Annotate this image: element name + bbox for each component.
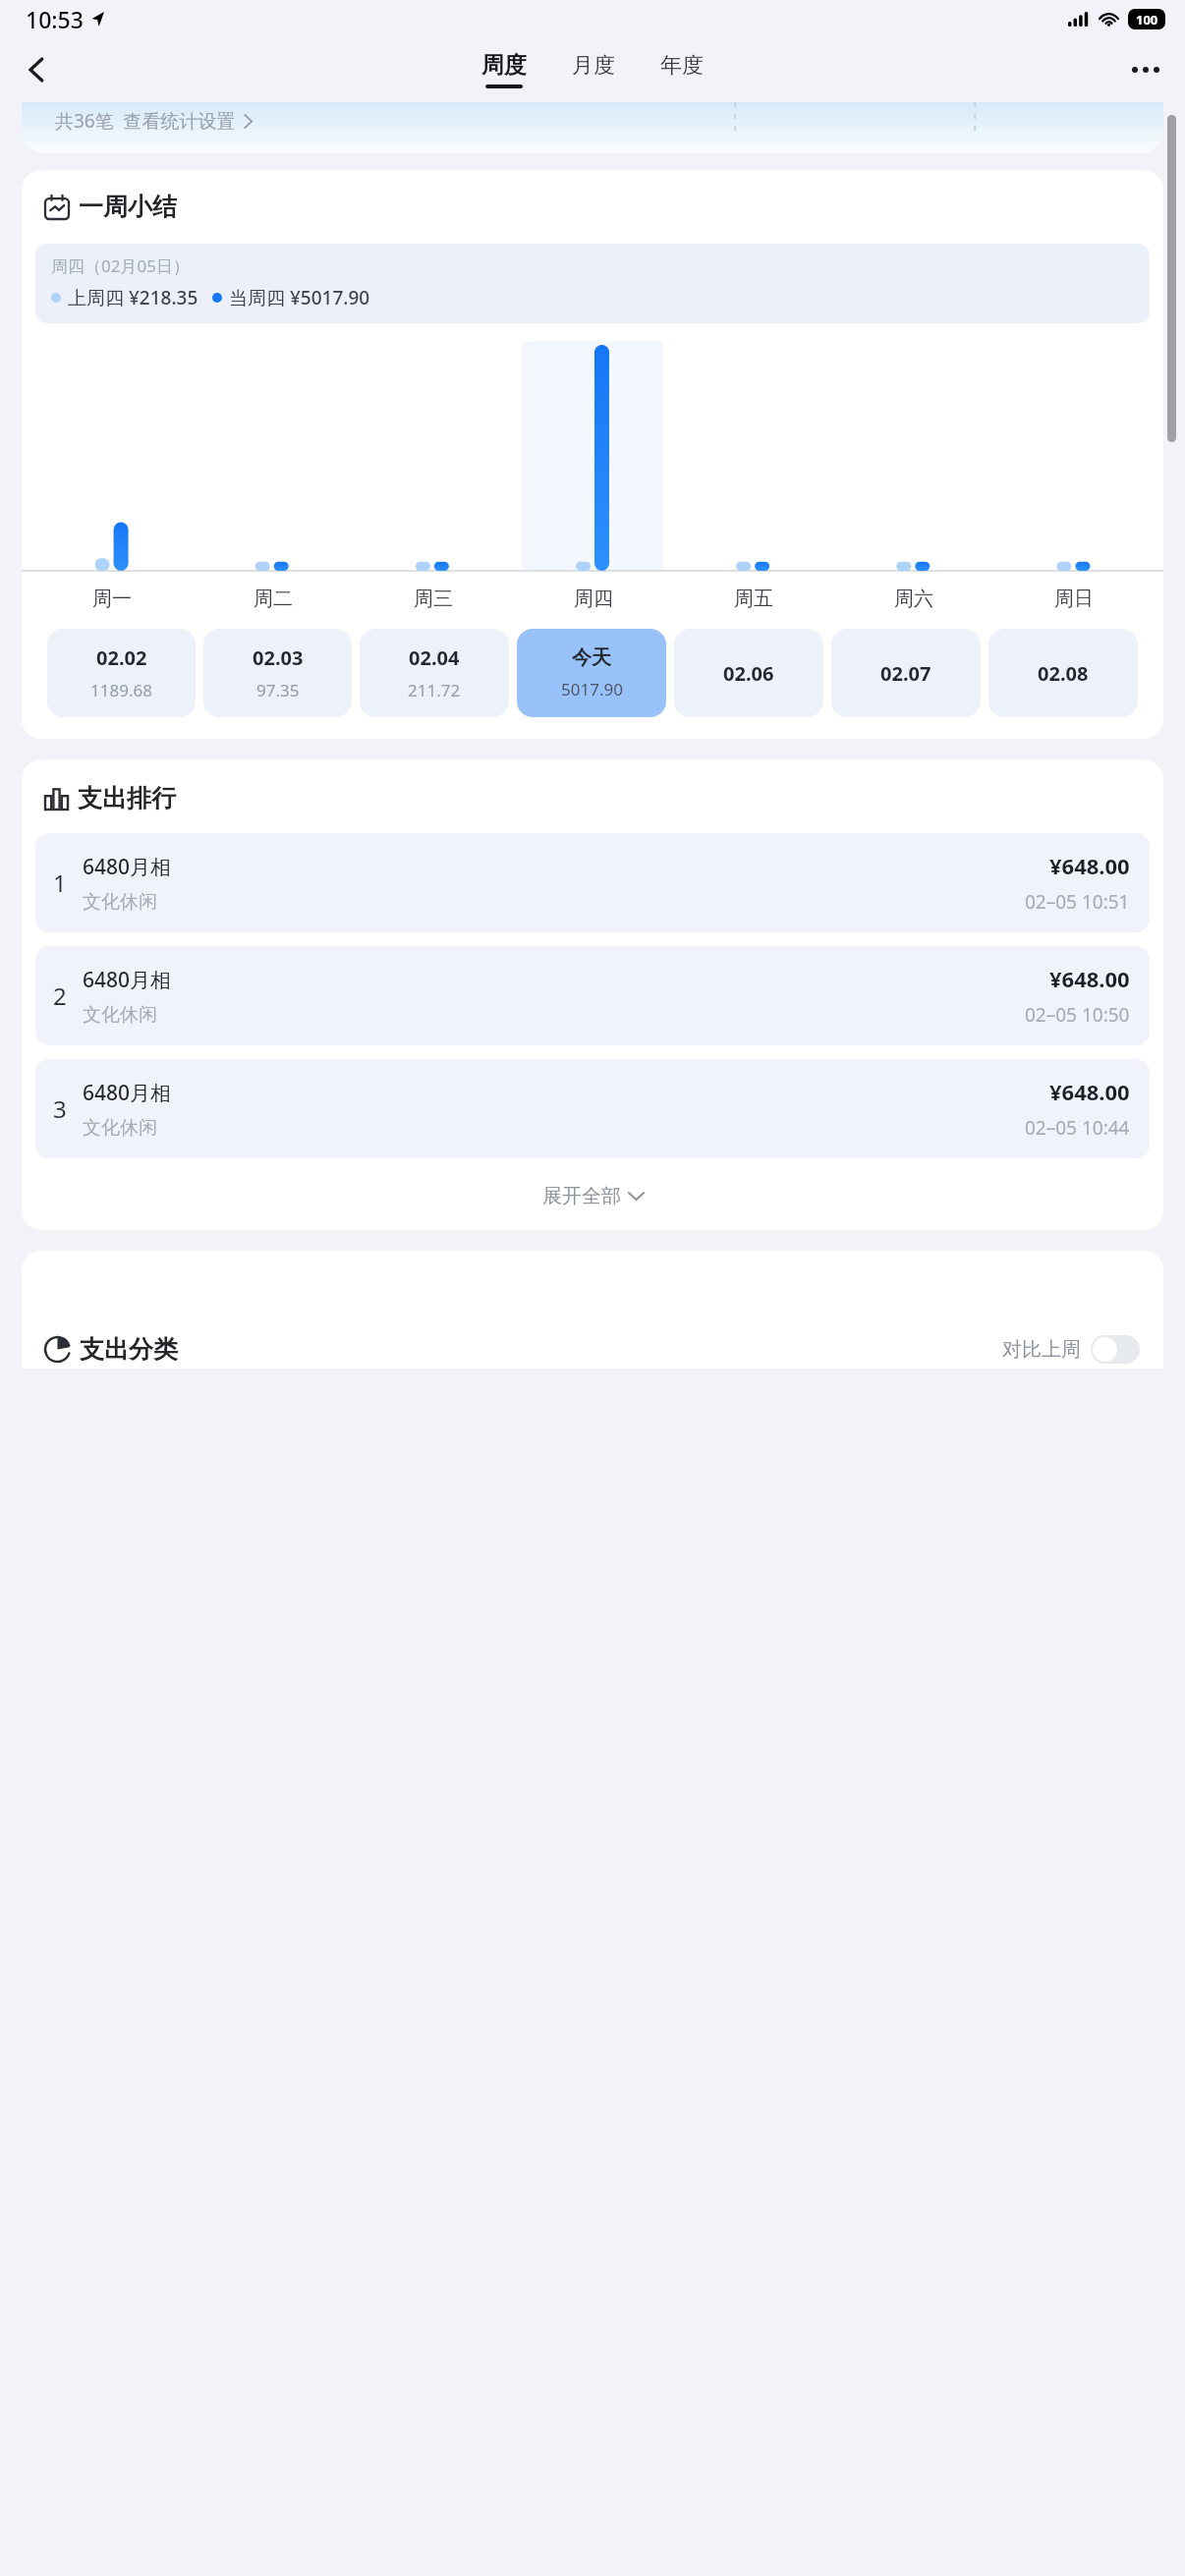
staticText: 支出分类 <box>80 1334 178 1365</box>
staticText: 年度 <box>660 52 704 80</box>
staticText: 一周小结 <box>79 192 177 222</box>
button[interactable]: 一周小结 <box>45 192 177 222</box>
staticText: 对比上周 <box>1002 1337 1081 1362</box>
staticText: 文化休闲 <box>83 1116 157 1140</box>
staticText: 10:53 <box>26 4 84 34</box>
staticText: 文化休闲 <box>83 890 157 914</box>
button[interactable]: 1 <box>35 833 1150 932</box>
staticText: 1189.68 <box>90 679 152 701</box>
button[interactable]: 周度 <box>478 47 531 92</box>
staticText: 02.07 <box>880 660 931 687</box>
staticText: 月度 <box>572 52 615 80</box>
button[interactable]: Back <box>12 44 63 95</box>
staticText: 今天 <box>572 645 611 670</box>
button[interactable]: 支出排行 <box>45 783 176 813</box>
staticText: 周四 <box>574 587 613 611</box>
staticText: 当周四 ¥5017.90 <box>229 285 370 310</box>
button[interactable]: 支出分类 <box>45 1334 178 1365</box>
button[interactable]: 对比上周 <box>1002 1335 1140 1364</box>
staticText: 6480月相 <box>83 966 172 994</box>
button[interactable]: 02.04 <box>360 629 509 717</box>
staticText: ¥648.00 <box>1049 851 1130 880</box>
staticText: 100 <box>1136 11 1158 28</box>
button[interactable]: 展开全部 <box>22 1178 1163 1214</box>
staticText: ¥648.00 <box>1049 1077 1130 1106</box>
staticText: ¥648.00 <box>1049 964 1130 993</box>
staticText: 周日 <box>1054 587 1094 611</box>
button[interactable]: 2 <box>35 946 1150 1045</box>
staticText: 周六 <box>894 587 933 611</box>
staticText: 文化休闲 <box>83 1003 157 1027</box>
staticText: 周二 <box>254 587 293 611</box>
button[interactable]: 共36笔 查看统计设置 <box>22 102 1163 153</box>
staticText: 3 <box>53 1092 67 1125</box>
button[interactable]: 3 <box>35 1059 1150 1158</box>
button[interactable]: 02.07 <box>831 629 981 717</box>
button[interactable]: 今天 <box>517 629 666 717</box>
button[interactable]: 02.06 <box>674 629 823 717</box>
staticText: 5017.90 <box>561 678 623 700</box>
staticText: 02–05 10:50 <box>1025 1002 1130 1028</box>
staticText: 周四（02月05日） <box>51 254 190 277</box>
staticText: 共36笔 查看统计设置 <box>55 108 236 134</box>
staticText: 211.72 <box>408 679 461 701</box>
staticText: 6480月相 <box>83 1079 172 1107</box>
staticText: 1 <box>53 867 67 899</box>
staticText: 02.04 <box>409 644 460 671</box>
staticText: 周度 <box>481 51 527 80</box>
staticText: 02.08 <box>1038 660 1089 687</box>
button[interactable]: 月度 <box>568 48 619 92</box>
button[interactable]: 02.02 <box>47 629 196 717</box>
staticText: 周三 <box>414 587 453 611</box>
staticText: 02–05 10:44 <box>1025 1115 1130 1141</box>
staticText: 展开全部 <box>542 1184 621 1208</box>
staticText: 上周四 ¥218.35 <box>68 285 198 310</box>
button[interactable]: 02.03 <box>203 629 352 717</box>
staticText: 02.03 <box>253 644 304 671</box>
staticText: 97.35 <box>256 679 300 701</box>
staticText: 02–05 10:51 <box>1025 889 1130 915</box>
staticText: 02.02 <box>96 644 147 671</box>
button[interactable]: 年度 <box>656 48 707 92</box>
staticText: 支出排行 <box>78 783 176 813</box>
staticText: 2 <box>53 980 67 1012</box>
staticText: 6480月相 <box>83 853 172 881</box>
staticText: 02.06 <box>723 660 774 687</box>
button[interactable]: More options <box>1120 44 1171 95</box>
staticText: 周五 <box>734 587 773 611</box>
staticText: 周一 <box>92 587 132 611</box>
button[interactable]: 02.08 <box>988 629 1138 717</box>
